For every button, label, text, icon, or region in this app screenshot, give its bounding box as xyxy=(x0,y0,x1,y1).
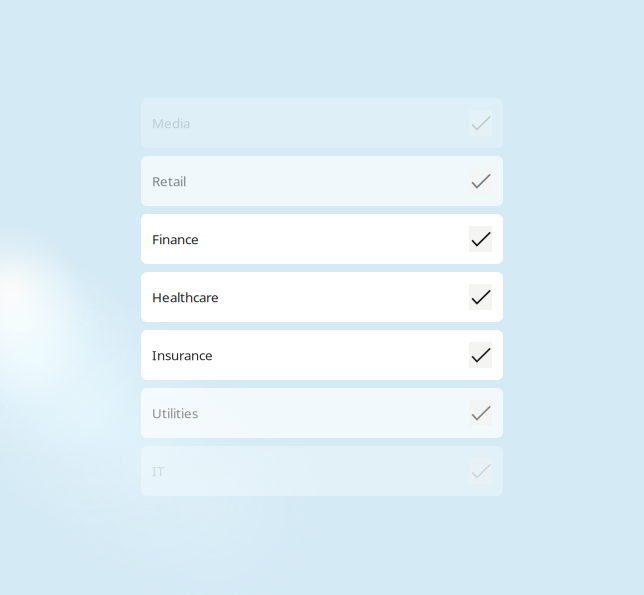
staticText: Media xyxy=(152,114,190,132)
staticText: Retail xyxy=(152,172,186,190)
button[interactable]: Retail xyxy=(141,156,503,206)
staticText: Insurance xyxy=(152,346,213,364)
button[interactable]: Healthcare xyxy=(141,272,503,322)
staticText: Healthcare xyxy=(152,288,219,306)
staticText: IT xyxy=(152,462,164,480)
button[interactable]: Insurance xyxy=(141,330,503,380)
button[interactable]: Utilities xyxy=(141,388,503,438)
staticText: Utilities xyxy=(152,404,198,422)
button[interactable]: Finance xyxy=(141,214,503,264)
staticText: Finance xyxy=(152,230,199,248)
